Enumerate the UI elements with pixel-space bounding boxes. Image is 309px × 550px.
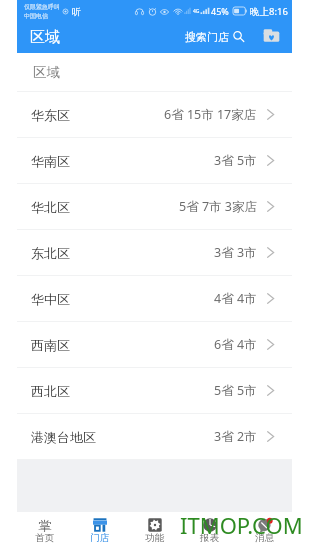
button[interactable]: 消息 [237, 512, 292, 550]
staticText: 华中区 [31, 291, 70, 307]
button[interactable]: 西南区 [17, 322, 292, 368]
staticText: 6省 15市 17家店 [164, 106, 257, 123]
staticText: 听 [72, 6, 81, 17]
button[interactable]: 门店 [72, 512, 127, 550]
staticText: ITMOP.COM [180, 510, 303, 540]
staticText: 东北区 [31, 245, 70, 261]
staticText: 仅限紧急呼叫 [24, 3, 60, 11]
button[interactable]: 华南区 [17, 138, 292, 184]
staticText: 港澳台地区 [31, 429, 96, 445]
staticText: 掌 [38, 518, 52, 532]
staticText: 晚上8:16 [250, 5, 288, 18]
staticText: 华东区 [31, 107, 70, 123]
staticText: 6省 4市 [214, 336, 257, 353]
staticText: 3省 3市 [214, 244, 257, 261]
staticText: 华北区 [31, 199, 70, 215]
staticText: 3省 2市 [214, 428, 257, 445]
button[interactable]: 华中区 [17, 276, 292, 322]
staticText: 4省 4市 [214, 290, 257, 307]
button[interactable]: 东北区 [17, 230, 292, 276]
staticText: 消息 [255, 532, 274, 544]
staticText: 首页 [35, 532, 54, 544]
button[interactable]: 华北区 [17, 184, 292, 230]
staticText: 5省 5市 [214, 382, 257, 399]
staticText: 3省 5市 [214, 152, 257, 169]
staticText: 中国电信 [24, 12, 48, 20]
staticText: 区域 [30, 28, 60, 47]
button[interactable]: 港澳台地区 [17, 414, 292, 460]
staticText: 区域 [33, 64, 60, 81]
button[interactable]: 搜索门店 [185, 31, 245, 45]
button[interactable]: 报表 [182, 512, 237, 550]
button[interactable]: 掌 [17, 512, 72, 550]
staticText: 西南区 [31, 337, 70, 353]
staticText: 门店 [90, 532, 109, 544]
staticText: 45% [211, 5, 229, 17]
staticText: 功能 [145, 532, 164, 544]
button[interactable]: 收藏门店 [259, 27, 281, 49]
staticText: 5省 7市 3家店 [179, 198, 257, 215]
staticText: 西北区 [31, 383, 70, 399]
button[interactable]: 华东区 [17, 92, 292, 138]
button[interactable]: 功能 [127, 512, 182, 550]
staticText: 搜索门店 [185, 30, 229, 44]
button[interactable]: 西北区 [17, 368, 292, 414]
staticText: 报表 [200, 532, 219, 544]
staticText: 4G [193, 8, 200, 15]
staticText: 华南区 [31, 153, 70, 169]
